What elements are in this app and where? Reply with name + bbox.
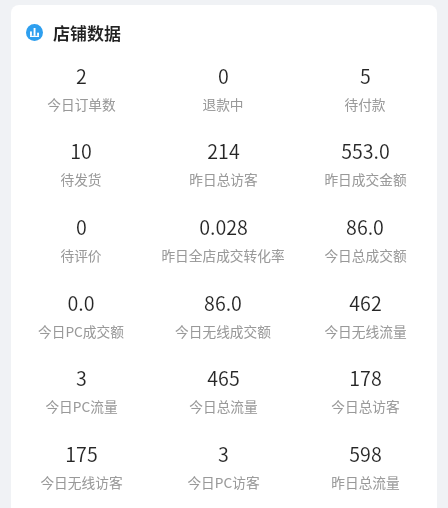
staticText: 今日PC成交额 — [38, 321, 124, 341]
staticText: 3 — [76, 363, 87, 391]
staticText: 5 — [360, 61, 371, 89]
button[interactable]: 0 — [11, 212, 152, 287]
staticText: 今日总访客 — [331, 396, 400, 416]
button[interactable]: 10 — [11, 136, 152, 211]
staticText: 598 — [349, 439, 382, 467]
staticText: 178 — [349, 363, 382, 391]
button[interactable]: 3 — [152, 439, 294, 508]
button[interactable]: 0.0 — [11, 288, 152, 363]
button[interactable]: 3 — [11, 363, 152, 438]
staticText: 2 — [76, 61, 87, 89]
staticText: 0.028 — [199, 212, 248, 240]
staticText: 昨日总访客 — [189, 169, 258, 189]
staticText: 退款中 — [202, 94, 244, 114]
staticText: 今日总流量 — [189, 396, 258, 416]
staticText: 今日无线成交额 — [175, 321, 271, 341]
staticText: 86.0 — [204, 288, 242, 316]
button[interactable]: 175 — [11, 439, 152, 508]
staticText: 今日无线访客 — [40, 472, 123, 492]
staticText: 553.0 — [341, 136, 390, 164]
staticText: 昨日总流量 — [331, 472, 400, 492]
staticText: 0 — [76, 212, 87, 240]
button[interactable]: 0.028 — [152, 212, 294, 287]
button[interactable]: 86.0 — [294, 212, 436, 287]
staticText: 0.0 — [67, 288, 95, 316]
button[interactable]: 598 — [294, 439, 436, 508]
staticText: 10 — [70, 136, 92, 164]
staticText: 462 — [349, 288, 382, 316]
staticText: 待付款 — [344, 94, 386, 114]
button[interactable]: 214 — [152, 136, 294, 211]
staticText: 今日无线流量 — [324, 321, 407, 341]
button[interactable]: 86.0 — [152, 288, 294, 363]
button[interactable]: 店铺数据图标 — [26, 20, 121, 45]
button[interactable]: 462 — [294, 288, 436, 363]
staticText: 3 — [218, 439, 229, 467]
button[interactable]: 178 — [294, 363, 436, 438]
staticText: 175 — [65, 439, 98, 467]
button[interactable]: 553.0 — [294, 136, 436, 211]
staticText: 0 — [218, 61, 229, 89]
staticText: 86.0 — [346, 212, 384, 240]
staticText: 214 — [207, 136, 240, 164]
staticText: 昨日全店成交转化率 — [161, 245, 285, 265]
staticText: 今日总成交额 — [324, 245, 407, 265]
button[interactable]: 0 — [152, 61, 294, 136]
staticText: 昨日成交金额 — [324, 169, 407, 189]
staticText: 今日订单数 — [47, 94, 116, 114]
staticText: 待评价 — [60, 245, 102, 265]
button[interactable]: 5 — [294, 61, 436, 136]
staticText: 店铺数据 — [53, 20, 121, 45]
button[interactable]: 2 — [11, 61, 152, 136]
staticText: 今日PC流量 — [45, 396, 118, 416]
staticText: 465 — [207, 363, 240, 391]
staticText: 今日PC访客 — [187, 472, 260, 492]
other: 店铺数据图标 — [26, 24, 43, 41]
staticText: 待发货 — [60, 169, 102, 189]
button[interactable]: 465 — [152, 363, 294, 438]
